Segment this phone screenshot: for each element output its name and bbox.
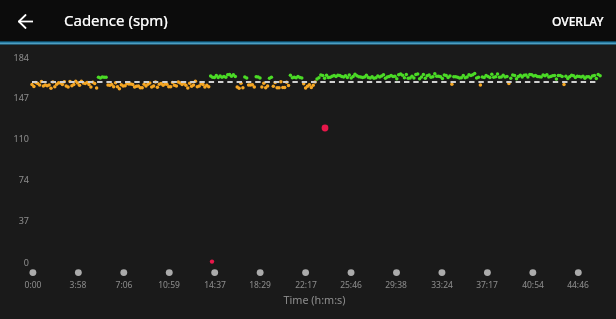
staticText: 14:37 — [193, 279, 237, 291]
staticText: Time (h:m:s) — [29, 292, 600, 307]
staticText: 147 — [0, 91, 29, 103]
button[interactable]: OVERLAY — [540, 0, 616, 41]
button[interactable]: Back — [12, 7, 40, 35]
staticText: OVERLAY — [552, 13, 604, 29]
staticText: 33:24 — [420, 279, 464, 291]
staticText: 29:38 — [374, 279, 418, 291]
staticText: 184 — [0, 51, 29, 63]
staticText: 0 — [0, 256, 29, 268]
staticText: 44:46 — [556, 279, 600, 291]
staticText: 7:06 — [102, 279, 146, 291]
staticText: 3:58 — [56, 279, 100, 291]
button[interactable]: Cadence chart — [0, 45, 616, 319]
staticText: 110 — [0, 132, 29, 144]
staticText: 40:54 — [511, 279, 555, 291]
staticText: 74 — [0, 173, 29, 185]
staticText: 0:00 — [11, 279, 55, 291]
staticText: 25:46 — [329, 279, 373, 291]
staticText: 37 — [0, 214, 29, 226]
staticText: 22:17 — [284, 279, 328, 291]
staticText: Cadence (spm) — [64, 10, 168, 30]
staticText: 37:17 — [465, 279, 509, 291]
staticText: 10:59 — [147, 279, 191, 291]
staticText: 18:29 — [238, 279, 282, 291]
